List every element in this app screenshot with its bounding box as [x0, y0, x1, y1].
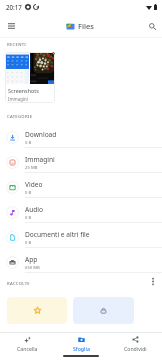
staticText: 0 B [25, 215, 32, 221]
button[interactable]: Preferiti [7, 297, 67, 324]
staticText: 0 B [25, 190, 32, 196]
staticText: CATEGORIE [7, 114, 33, 120]
staticText: Download [25, 130, 57, 139]
staticText: 20:17 [6, 3, 22, 11]
staticText: Sfoglia [73, 345, 90, 352]
button[interactable]: Documenti e altri file [0, 223, 162, 247]
staticText: Screenshots [8, 87, 39, 94]
staticText: 0 B [25, 140, 32, 146]
button[interactable]: Download [0, 123, 162, 147]
staticText: 650 MB [25, 265, 40, 271]
button[interactable]: Audio [0, 198, 162, 222]
staticText: Cancella [17, 345, 38, 352]
staticText: 0 B [25, 240, 32, 246]
button[interactable]: More options [146, 274, 160, 288]
button[interactable]: App [0, 248, 162, 272]
button[interactable]: Video [0, 173, 162, 197]
staticText: 25 MB [25, 165, 38, 171]
staticText: Immagini [25, 155, 55, 164]
button[interactable]: Open navigation menu [3, 18, 19, 34]
staticText: Documenti e altri file [25, 230, 90, 239]
staticText: Condividi [124, 345, 147, 352]
staticText: RECENTI [7, 42, 27, 48]
staticText: App [25, 255, 38, 264]
button[interactable]: Screenshots [5, 52, 55, 103]
staticText: RACCOLTE [7, 281, 30, 287]
staticText: Files [78, 21, 94, 31]
button[interactable]: Cancella [0, 333, 54, 360]
button[interactable]: Condividi [108, 333, 162, 360]
staticText: Audio [25, 205, 44, 214]
button[interactable]: Search [144, 18, 160, 34]
staticText: Video [25, 180, 43, 189]
staticText: Immagini [8, 96, 28, 102]
button[interactable]: File sicuri [73, 297, 134, 324]
button[interactable]: Sfoglia [54, 333, 108, 360]
button[interactable]: Immagini [0, 148, 162, 172]
